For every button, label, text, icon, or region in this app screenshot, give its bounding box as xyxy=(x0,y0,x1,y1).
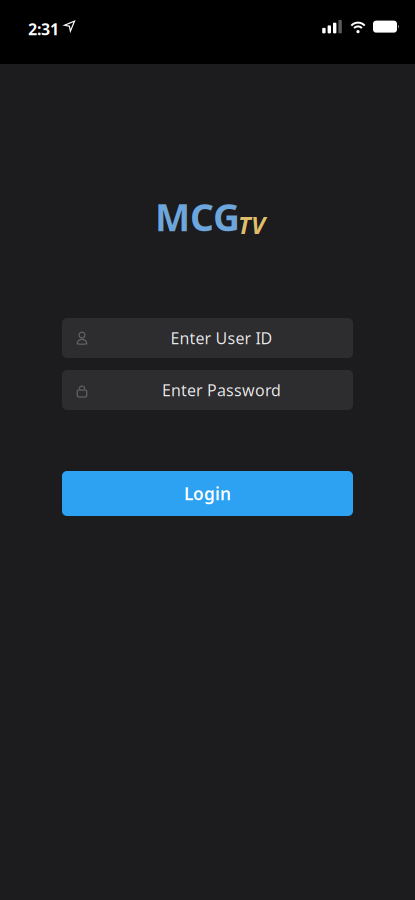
button[interactable]: Enter User ID xyxy=(62,318,353,358)
button[interactable]: Enter Password xyxy=(62,370,353,410)
button[interactable]: Login xyxy=(62,471,353,516)
staticText: MCG xyxy=(155,192,240,242)
staticText: Login xyxy=(184,482,231,505)
staticText: Enter Password xyxy=(162,379,281,401)
staticText: TV xyxy=(238,209,265,241)
staticText: 2:31 xyxy=(28,18,59,40)
staticText: Enter User ID xyxy=(170,327,272,349)
